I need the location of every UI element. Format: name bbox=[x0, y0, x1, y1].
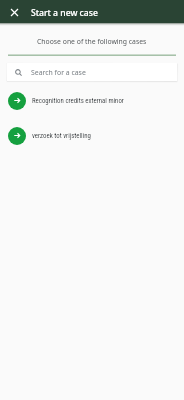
button[interactable]: Choose one of the following cases bbox=[0, 23, 184, 56]
staticText: Start a new case bbox=[31, 7, 98, 19]
button[interactable]: verzoek tot vrijstelling bbox=[0, 118, 184, 153]
button[interactable]: Recognition credits external minor bbox=[0, 83, 184, 118]
staticText: verzoek tot vrijstelling bbox=[32, 132, 91, 140]
button[interactable]: Search for a case bbox=[7, 63, 177, 81]
staticText: Search for a case bbox=[31, 68, 86, 77]
staticText: Recognition credits external minor bbox=[32, 97, 124, 105]
staticText: Choose one of the following cases bbox=[37, 37, 147, 46]
button[interactable]: Close bbox=[7, 5, 21, 19]
